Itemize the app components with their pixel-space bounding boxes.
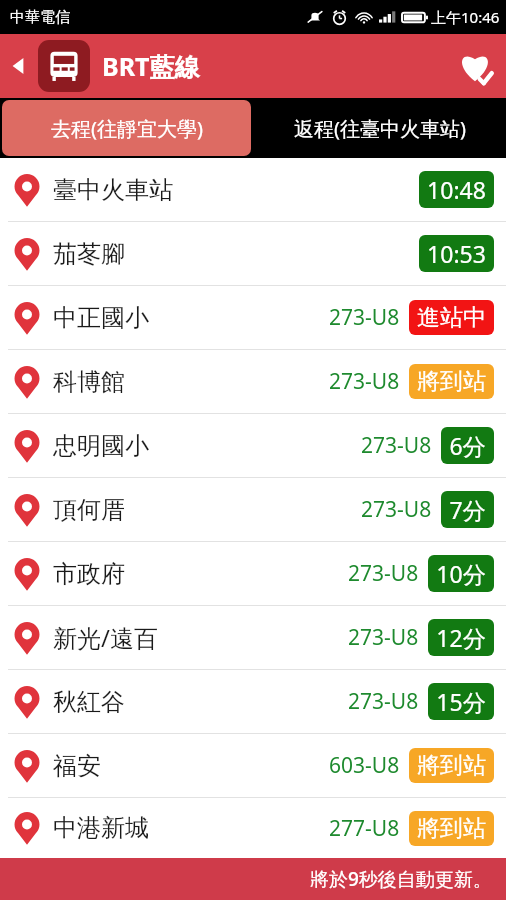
button[interactable]: Back bbox=[0, 34, 38, 98]
staticText: 中港新城 bbox=[53, 813, 149, 843]
staticText: 273-U8 bbox=[348, 559, 419, 588]
button[interactable]: 去程(往靜宜大學) bbox=[2, 100, 251, 156]
staticText: 忠明國小 bbox=[53, 431, 149, 461]
staticText: 273-U8 bbox=[348, 623, 419, 652]
button[interactable]: 茄苳腳 bbox=[0, 222, 506, 285]
button[interactable]: Favorite bbox=[444, 34, 506, 98]
button[interactable]: 返程(往臺中火車站) bbox=[253, 98, 506, 158]
staticText: 273-U8 bbox=[329, 303, 400, 332]
button[interactable]: 市政府 bbox=[0, 542, 506, 605]
staticText: 12分 bbox=[436, 622, 486, 653]
staticText: 新光/遠百 bbox=[53, 621, 158, 654]
staticText: 中華電信 bbox=[10, 8, 70, 27]
staticText: 277-U8 bbox=[329, 814, 400, 843]
button[interactable]: 中港新城 bbox=[0, 798, 506, 858]
button[interactable]: 福安 bbox=[0, 734, 506, 797]
staticText: 10:53 bbox=[427, 238, 486, 269]
button[interactable]: 頂何厝 bbox=[0, 478, 506, 541]
button[interactable]: 科博館 bbox=[0, 350, 506, 413]
button[interactable]: 新光/遠百 bbox=[0, 606, 506, 669]
staticText: 科博館 bbox=[53, 367, 125, 397]
button[interactable]: 中正國小 bbox=[0, 286, 506, 349]
staticText: 中正國小 bbox=[53, 303, 149, 333]
staticText: 頂何厝 bbox=[53, 495, 125, 525]
staticText: 返程(往臺中火車站) bbox=[294, 115, 466, 142]
button[interactable]: 忠明國小 bbox=[0, 414, 506, 477]
staticText: 10:48 bbox=[427, 174, 486, 205]
button[interactable]: 臺中火車站 bbox=[0, 158, 506, 221]
staticText: 進站中 bbox=[417, 303, 486, 332]
staticText: 臺中火車站 bbox=[53, 175, 173, 205]
staticText: 將到站 bbox=[417, 814, 486, 843]
staticText: 273-U8 bbox=[329, 367, 400, 396]
staticText: 7分 bbox=[449, 494, 486, 525]
staticText: 10分 bbox=[436, 558, 486, 589]
staticText: BRT藍線 bbox=[102, 49, 200, 83]
staticText: 上午10:46 bbox=[431, 7, 500, 27]
button[interactable]: 秋紅谷 bbox=[0, 670, 506, 733]
staticText: 秋紅谷 bbox=[53, 687, 125, 717]
staticText: 茄苳腳 bbox=[53, 239, 125, 269]
staticText: 市政府 bbox=[53, 559, 125, 589]
staticText: 將到站 bbox=[417, 367, 486, 396]
staticText: 6分 bbox=[449, 430, 486, 461]
staticText: 將於9秒後自動更新。 bbox=[310, 866, 492, 892]
staticText: 273-U8 bbox=[361, 431, 432, 460]
staticText: 603-U8 bbox=[329, 751, 400, 780]
staticText: 將到站 bbox=[417, 751, 486, 780]
staticText: 福安 bbox=[53, 751, 101, 781]
staticText: 15分 bbox=[436, 686, 486, 717]
staticText: 去程(往靜宜大學) bbox=[51, 115, 203, 142]
staticText: 273-U8 bbox=[348, 687, 419, 716]
staticText: 273-U8 bbox=[361, 495, 432, 524]
